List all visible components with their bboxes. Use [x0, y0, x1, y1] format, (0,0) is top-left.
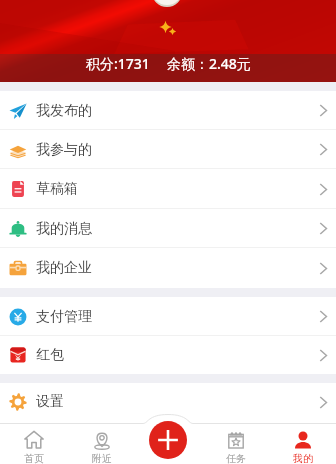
button[interactable]: 我的消息 — [0, 209, 336, 248]
button[interactable]: 附近 — [68, 423, 135, 464]
staticText: 设置 — [36, 393, 64, 411]
staticText: 我参与的 — [36, 141, 92, 159]
staticText: 红包 — [36, 346, 64, 364]
button[interactable]: 首页 — [0, 423, 68, 464]
staticText: 附近 — [92, 452, 112, 464]
button[interactable]: 设置 — [0, 383, 336, 421]
button[interactable]: 支付管理 — [0, 297, 336, 336]
button[interactable]: 红包 — [0, 336, 336, 374]
button[interactable]: 我参与的 — [0, 130, 336, 169]
staticText: 我的消息 — [36, 220, 92, 238]
button[interactable]: 我的 — [269, 423, 336, 464]
staticText: 余额：2.48元 — [167, 54, 251, 73]
staticText: 我的 — [293, 452, 313, 464]
staticText: 我的企业 — [36, 259, 92, 277]
staticText: 积分:1731 — [86, 54, 150, 73]
button[interactable]: 任务 — [202, 423, 269, 464]
staticText: 首页 — [24, 452, 44, 464]
button[interactable]: 我的企业 — [0, 248, 336, 288]
button[interactable]: Add — [149, 421, 187, 459]
staticText: 草稿箱 — [36, 180, 78, 198]
staticText: 我发布的 — [36, 102, 92, 120]
staticText: 任务 — [226, 452, 246, 464]
button[interactable]: 草稿箱 — [0, 169, 336, 209]
button[interactable]: 我发布的 — [0, 91, 336, 130]
staticText: 支付管理 — [36, 308, 92, 326]
